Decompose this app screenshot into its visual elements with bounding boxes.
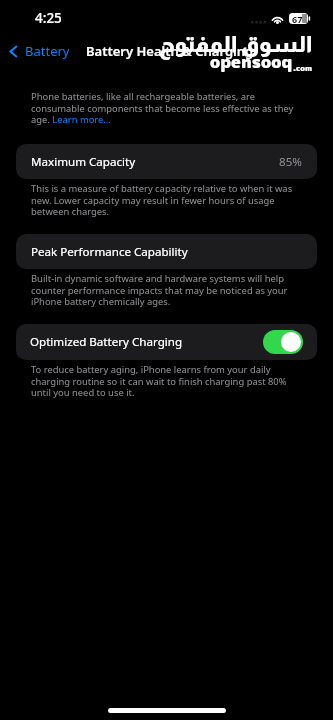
staticText: .com (293, 62, 313, 73)
button[interactable]: Optimized Battery Charging (16, 324, 317, 360)
staticText: Battery Health & Charging (86, 42, 254, 60)
staticText: السوق المفتوح (159, 32, 313, 57)
button[interactable]: Maximum Capacity (16, 144, 317, 179)
staticText: 4:25 (35, 9, 62, 27)
staticText: Phone batteries, like all rechargeable b… (31, 90, 297, 126)
staticText: Battery (25, 42, 70, 60)
staticText: This is a measure of battery capacity re… (31, 182, 297, 218)
staticText: Maximum Capacity (31, 154, 136, 170)
staticText: opensooq (210, 50, 293, 74)
button[interactable]: Battery (6, 39, 73, 63)
staticText: Optimized Battery Charging (30, 334, 183, 350)
staticText: 85% (279, 154, 302, 170)
staticText: Built-in dynamic software and hardware s… (31, 272, 297, 308)
button[interactable]: Optimized Battery Charging toggle (263, 330, 303, 354)
button[interactable]: Peak Performance Capability (16, 234, 317, 269)
staticText: To reduce battery aging, iPhone learns f… (31, 363, 297, 399)
staticText: Peak Performance Capability (31, 244, 188, 260)
staticText: 67 (292, 13, 303, 24)
